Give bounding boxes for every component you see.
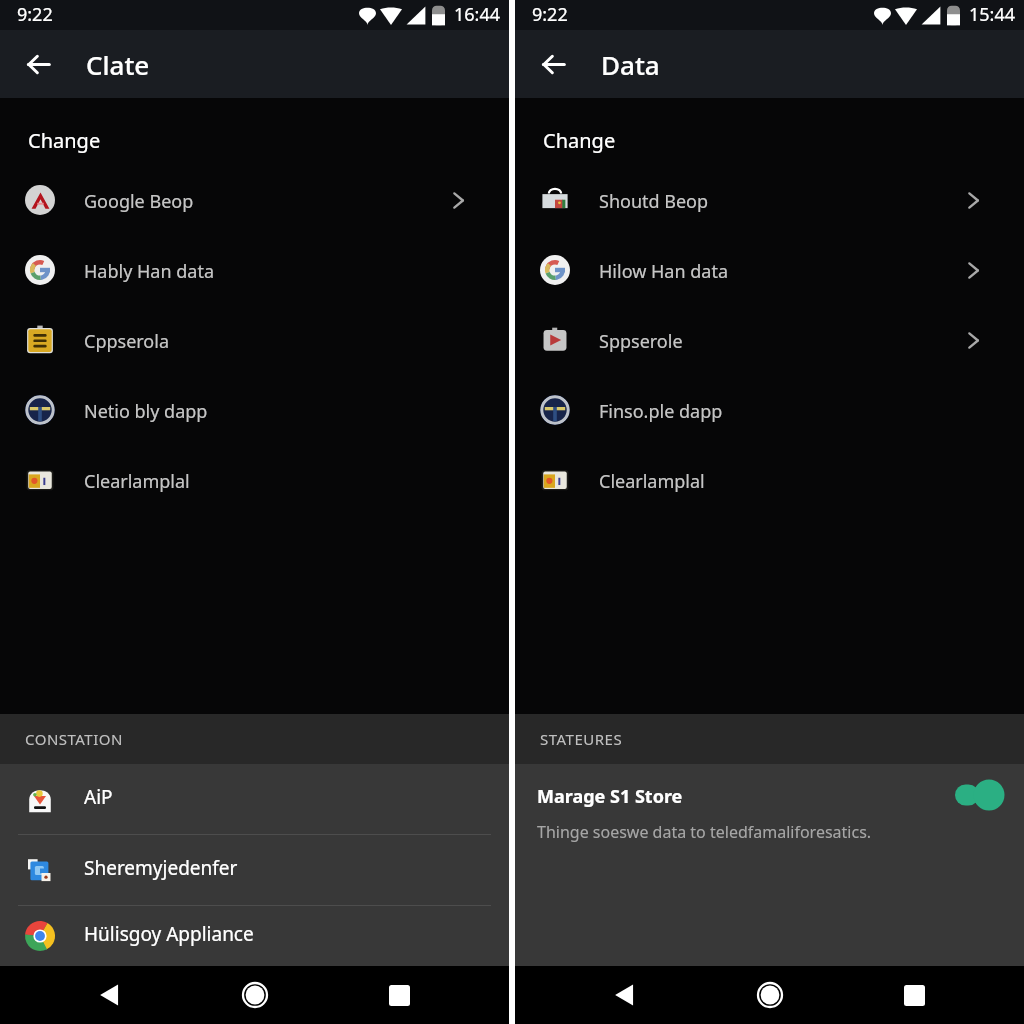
button[interactable]: Hülisgoy Appliance: [0, 906, 509, 966]
staticText: Change: [28, 127, 101, 154]
staticText: Cppserola: [84, 329, 169, 354]
staticText: Sheremyjedenfer: [84, 855, 238, 881]
staticText: 9:22: [17, 2, 53, 27]
staticText: 9:22: [532, 2, 568, 27]
staticText: Hably Han data: [84, 259, 215, 284]
staticText: STATEURES: [540, 729, 623, 749]
button[interactable]: Back: [601, 971, 649, 1019]
button[interactable]: Toggle storage manager: [940, 769, 1008, 821]
button[interactable]: Clearlamplal: [0, 445, 509, 515]
button[interactable]: Google Beop: [0, 165, 509, 235]
button[interactable]: Cppserola: [0, 305, 509, 375]
button[interactable]: Finso.ple dapp: [515, 375, 1024, 445]
staticText: Shoutd Beop: [599, 189, 709, 214]
staticText: Hilow Han data: [599, 259, 728, 284]
button[interactable]: Shoutd Beop: [515, 165, 1024, 235]
button[interactable]: Clearlamplal: [515, 445, 1024, 515]
button[interactable]: Sheremyjedenfer: [0, 835, 509, 905]
staticText: Data: [601, 47, 660, 82]
staticText: Clearlamplal: [84, 469, 190, 494]
button[interactable]: Hably Han data: [0, 235, 509, 305]
button[interactable]: Home: [231, 971, 279, 1019]
button[interactable]: Back: [529, 40, 577, 88]
staticText: Thinge soeswe data to teledfamaliforesat…: [537, 821, 872, 843]
staticText: Change: [543, 127, 616, 154]
staticText: 15:44: [969, 2, 1016, 27]
staticText: Netio bly dapp: [84, 399, 208, 424]
button[interactable]: Recents: [890, 971, 938, 1019]
staticText: Marage S1 Store: [537, 784, 683, 809]
staticText: Google Beop: [84, 189, 194, 214]
button[interactable]: Sppserole: [515, 305, 1024, 375]
button[interactable]: Home: [746, 971, 794, 1019]
staticText: 16:44: [454, 2, 501, 27]
button[interactable]: Back: [14, 40, 62, 88]
staticText: Hülisgoy Appliance: [84, 921, 254, 947]
staticText: Clearlamplal: [599, 469, 705, 494]
button[interactable]: Recents: [375, 971, 423, 1019]
staticText: CONSTATION: [25, 729, 123, 749]
button[interactable]: Netio bly dapp: [0, 375, 509, 445]
staticText: Sppserole: [599, 329, 683, 354]
button[interactable]: Hilow Han data: [515, 235, 1024, 305]
button[interactable]: Back: [86, 971, 134, 1019]
staticText: Finso.ple dapp: [599, 399, 723, 424]
staticText: AiP: [84, 784, 113, 810]
staticText: Clate: [86, 47, 150, 82]
button[interactable]: AiP: [0, 764, 509, 834]
